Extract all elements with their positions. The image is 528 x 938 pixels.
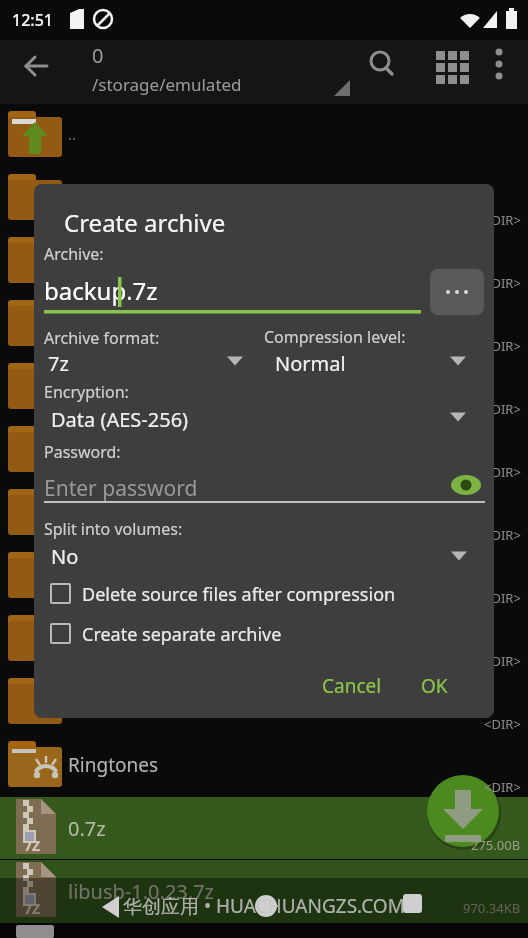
staticText: Ringtones xyxy=(68,752,159,778)
button[interactable] xyxy=(0,860,528,923)
button[interactable] xyxy=(50,623,71,644)
button[interactable] xyxy=(50,583,71,604)
staticText: Data (AES-256) xyxy=(51,406,189,433)
button[interactable]: OK xyxy=(404,664,464,708)
staticText: Create archive xyxy=(64,206,226,239)
staticText: Delete source files after compression xyxy=(82,582,396,607)
button[interactable] xyxy=(430,269,484,315)
staticText: OK xyxy=(421,673,448,699)
staticText: Normal xyxy=(275,350,346,377)
button[interactable] xyxy=(426,40,470,84)
staticText: Enter password xyxy=(44,474,198,503)
button[interactable] xyxy=(478,40,522,84)
button[interactable] xyxy=(271,344,471,378)
button[interactable] xyxy=(358,40,402,84)
staticText: Archive: xyxy=(44,243,104,265)
staticText: Cancel xyxy=(322,673,382,699)
button[interactable] xyxy=(0,734,528,797)
staticText: <DIR> xyxy=(484,652,521,670)
staticText: No xyxy=(51,543,79,570)
staticText: Archive format: xyxy=(44,327,160,349)
staticText: 970.34KB xyxy=(463,899,521,917)
staticText: <DIR> xyxy=(484,715,521,733)
button[interactable] xyxy=(44,400,471,434)
staticText: 0 xyxy=(92,42,104,69)
button[interactable] xyxy=(14,44,60,90)
button[interactable] xyxy=(44,344,244,378)
staticText: Split into volumes: xyxy=(44,518,183,540)
staticText: 7Z xyxy=(24,899,41,918)
staticText: Create separate archive xyxy=(82,622,282,647)
staticText: 0.7z xyxy=(68,815,106,842)
staticText: 12:51 xyxy=(12,9,53,31)
button[interactable] xyxy=(427,775,499,847)
staticText: backup.7z xyxy=(44,274,158,307)
button[interactable] xyxy=(0,797,528,860)
staticText: 7z xyxy=(48,350,69,377)
staticText: <DIR> xyxy=(484,400,521,418)
staticText: .. xyxy=(68,124,77,144)
staticText: 华创应用 • HUACHUANGZS.COM xyxy=(123,893,405,919)
staticText: Encryption: xyxy=(44,381,129,403)
staticText: <DIR> xyxy=(484,274,521,292)
staticText: <DIR> xyxy=(484,526,521,544)
staticText: <DIR> xyxy=(484,778,521,796)
staticText: Compression level: xyxy=(264,326,406,348)
staticText: 275.00B xyxy=(471,836,521,854)
staticText: <DIR> xyxy=(484,337,521,355)
staticText: <DIR> xyxy=(484,211,521,229)
staticText: <DIR> xyxy=(484,463,521,481)
button[interactable] xyxy=(44,537,471,571)
staticText: libusb-1.0.23.7z xyxy=(68,878,214,905)
staticText: 7Z xyxy=(24,836,41,855)
staticText: <DIR> xyxy=(484,589,521,607)
button[interactable]: Cancel xyxy=(310,664,394,708)
staticText: Password: xyxy=(44,441,121,463)
staticText: /storage/emulated xyxy=(92,73,242,96)
